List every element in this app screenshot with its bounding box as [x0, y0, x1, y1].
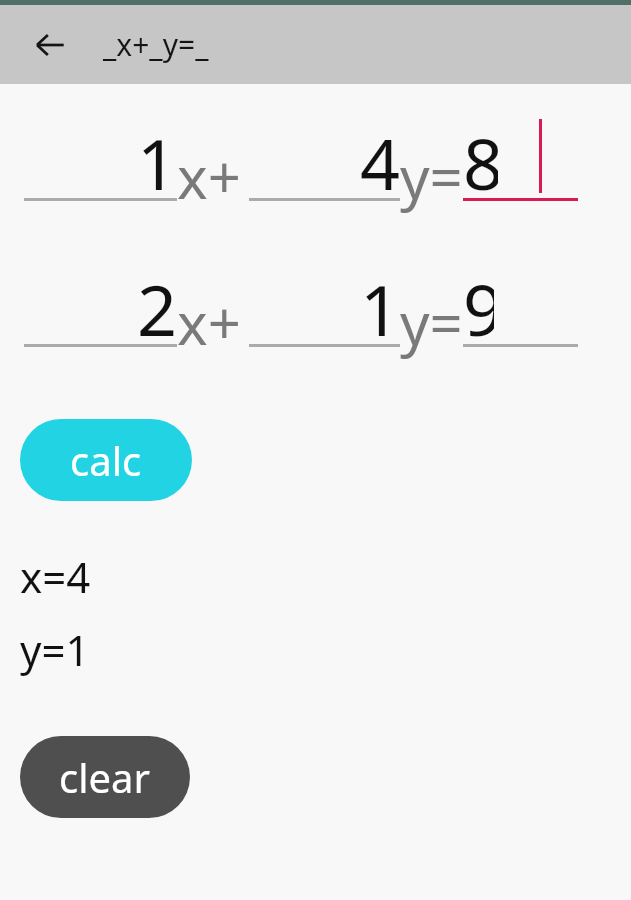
- button[interactable]: 1: [24, 115, 177, 201]
- staticText: y=: [400, 283, 463, 362]
- staticText: x+: [177, 137, 241, 216]
- button[interactable]: 1: [249, 261, 400, 347]
- button[interactable]: clear: [20, 736, 190, 818]
- staticText: 1: [359, 261, 400, 339]
- staticText: y=: [400, 137, 463, 216]
- staticText: x+: [177, 283, 241, 362]
- staticText: clear: [59, 750, 151, 804]
- staticText: _x+_y=_: [103, 24, 209, 65]
- button[interactable]: 2: [24, 261, 177, 347]
- staticText: calc: [70, 433, 142, 487]
- staticText: 1: [136, 115, 177, 193]
- staticText: 2: [136, 261, 177, 339]
- button[interactable]: Back: [22, 17, 78, 73]
- staticText: y=1: [20, 621, 90, 678]
- staticText: 8: [463, 115, 498, 193]
- staticText: 4: [359, 115, 400, 193]
- button[interactable]: 8: [463, 115, 578, 201]
- staticText: 9: [463, 261, 494, 339]
- button[interactable]: 4: [249, 115, 400, 201]
- staticText: x=4: [20, 548, 91, 605]
- button[interactable]: 9: [463, 261, 578, 347]
- button[interactable]: calc: [20, 419, 192, 501]
